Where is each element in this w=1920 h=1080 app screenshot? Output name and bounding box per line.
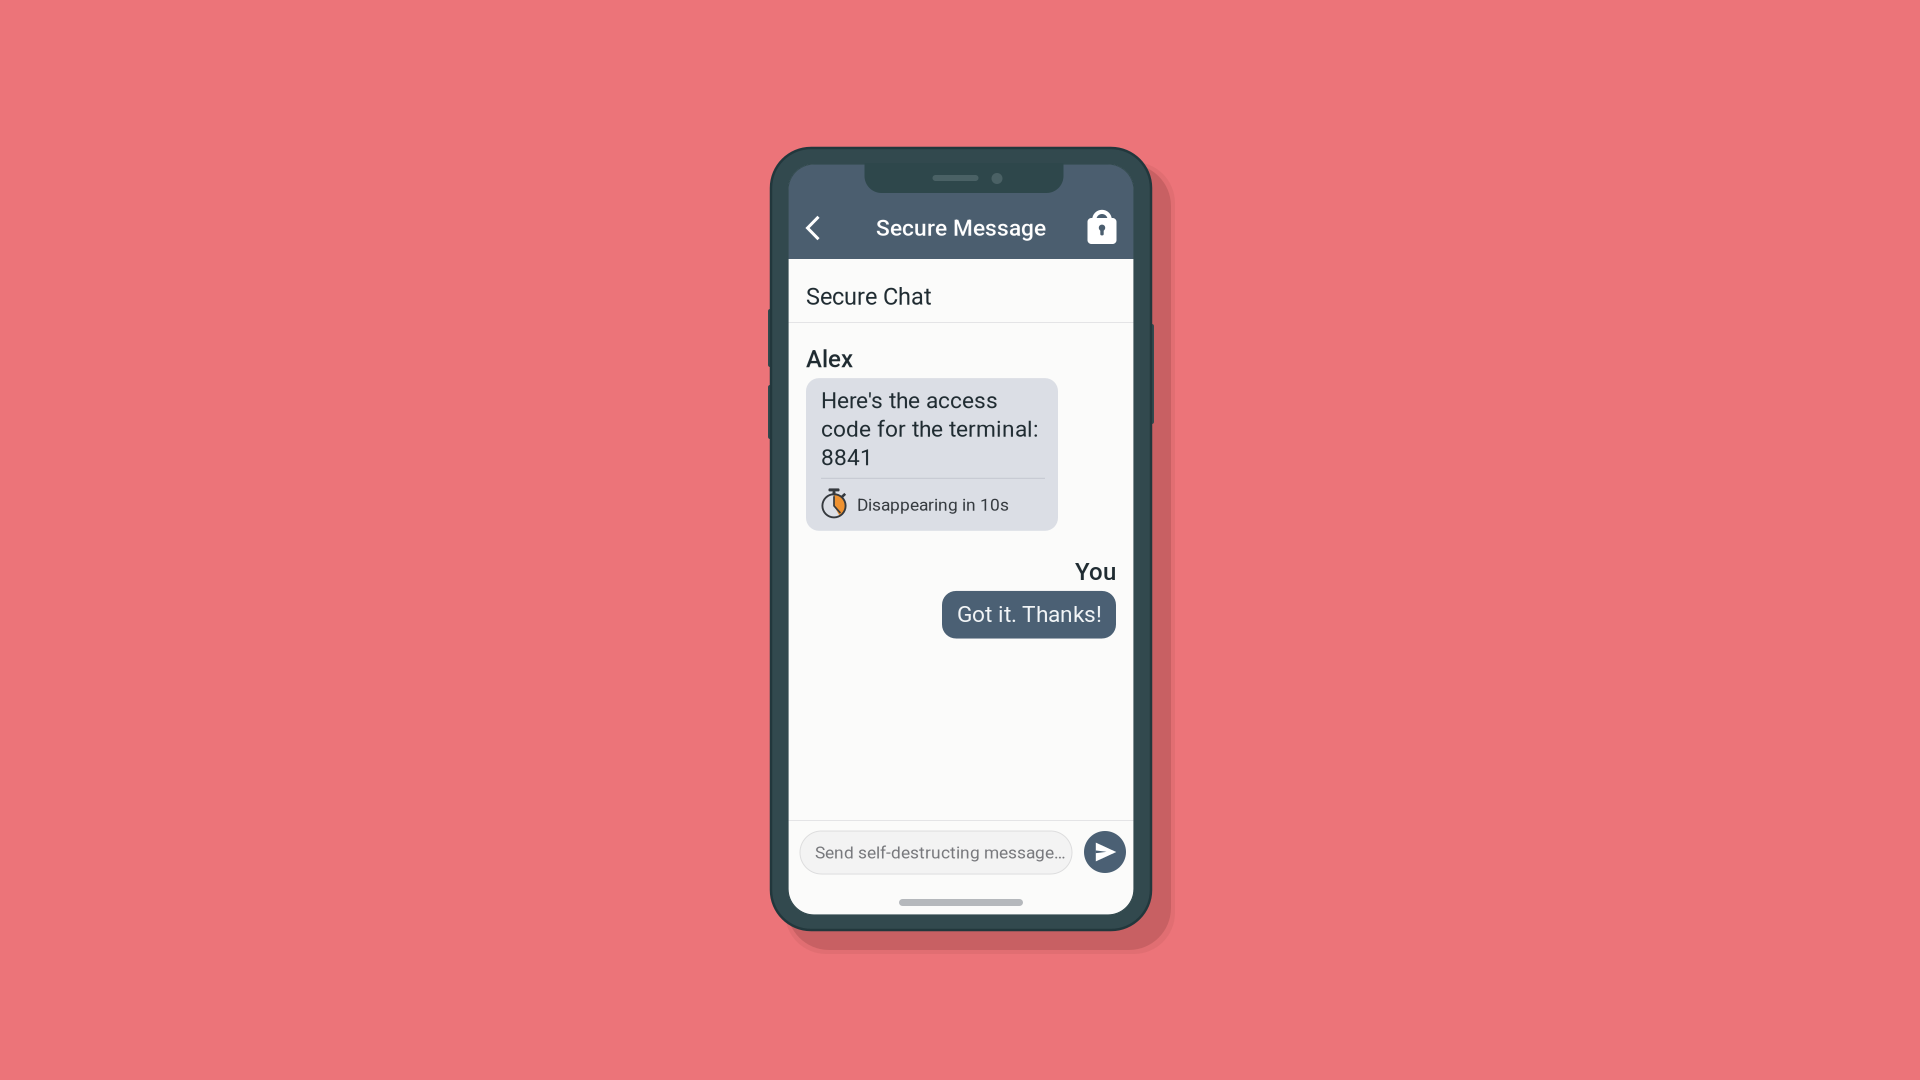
button[interactable]: Back [793, 206, 833, 250]
staticText: Secure Message [876, 215, 1046, 241]
staticText: Got it. Thanks! [957, 601, 1102, 627]
staticText: Send self-destructing message… [815, 842, 1066, 863]
button[interactable]: Send self-destructing message… [800, 831, 1072, 874]
staticText: Here's the access [821, 387, 998, 414]
button[interactable]: End-to-end encrypted [1082, 203, 1122, 247]
staticText: Disappearing in 10s [857, 495, 1009, 515]
staticText: You [1075, 558, 1116, 586]
button[interactable]: Send [1084, 831, 1126, 873]
staticText: code for the terminal: [821, 416, 1038, 442]
staticText: Alex [806, 345, 853, 373]
staticText: Secure Chat [806, 283, 932, 310]
staticText: 8841 [821, 444, 873, 471]
